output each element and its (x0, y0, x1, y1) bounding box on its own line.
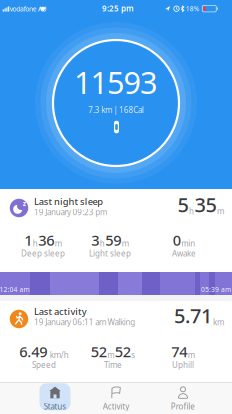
staticText: Status (44, 401, 66, 412)
staticText: 5 (177, 191, 188, 218)
staticText: 52 (115, 342, 131, 361)
staticText: h (100, 238, 105, 249)
staticText: km (213, 317, 224, 328)
staticText: Deep sleep (21, 248, 65, 259)
staticText: Speed (32, 360, 56, 370)
staticText: Time (104, 360, 122, 370)
button[interactable]: Profile (163, 383, 203, 410)
staticText: Profile (171, 401, 195, 412)
staticText: 7.3 km | 168Cal (88, 105, 144, 115)
staticText: m (188, 350, 195, 360)
staticText: Light sleep (89, 248, 131, 259)
staticText: min (181, 238, 195, 249)
staticText: m (107, 350, 114, 360)
staticText: 9:25 pm (102, 3, 134, 14)
staticText: Last activity (34, 305, 87, 318)
staticText: 36 (38, 230, 54, 250)
staticText: Activity (103, 401, 129, 412)
staticText: km/h (48, 350, 69, 360)
staticText: 3 (91, 230, 99, 250)
staticText: 59 (105, 230, 121, 250)
staticText: m (122, 238, 129, 249)
button[interactable] (0, 301, 232, 382)
staticText: 19 January 06:11 am Walking (34, 317, 135, 327)
staticText: Uphill (172, 360, 194, 370)
staticText: h (189, 206, 194, 217)
staticText: 1 (24, 230, 32, 250)
staticText: z (23, 199, 26, 208)
staticText: h (33, 238, 38, 249)
staticText: s (131, 350, 135, 360)
staticText: 52 (91, 342, 107, 361)
staticText: 74 (171, 342, 187, 361)
staticText: 05:39 am (201, 285, 231, 294)
staticText: 35 (194, 191, 216, 218)
staticText: 5.71 (174, 302, 212, 329)
staticText: m (55, 238, 62, 249)
button[interactable]: Status (39, 383, 70, 410)
staticText: 0 (173, 230, 181, 250)
staticText: Last night sleep (34, 195, 103, 208)
staticText: Awake (172, 248, 196, 259)
button[interactable] (0, 189, 232, 295)
staticText: 18% (186, 4, 200, 13)
staticText: m (217, 206, 224, 217)
staticText: 11593 (74, 62, 158, 102)
staticText: 12:04 am (0, 285, 29, 294)
button[interactable]: Activity (96, 383, 136, 410)
staticText: 6.49 (19, 342, 47, 361)
staticText: 19 January 09:23 pm (34, 207, 107, 217)
staticText: vodafone AU (10, 5, 47, 13)
